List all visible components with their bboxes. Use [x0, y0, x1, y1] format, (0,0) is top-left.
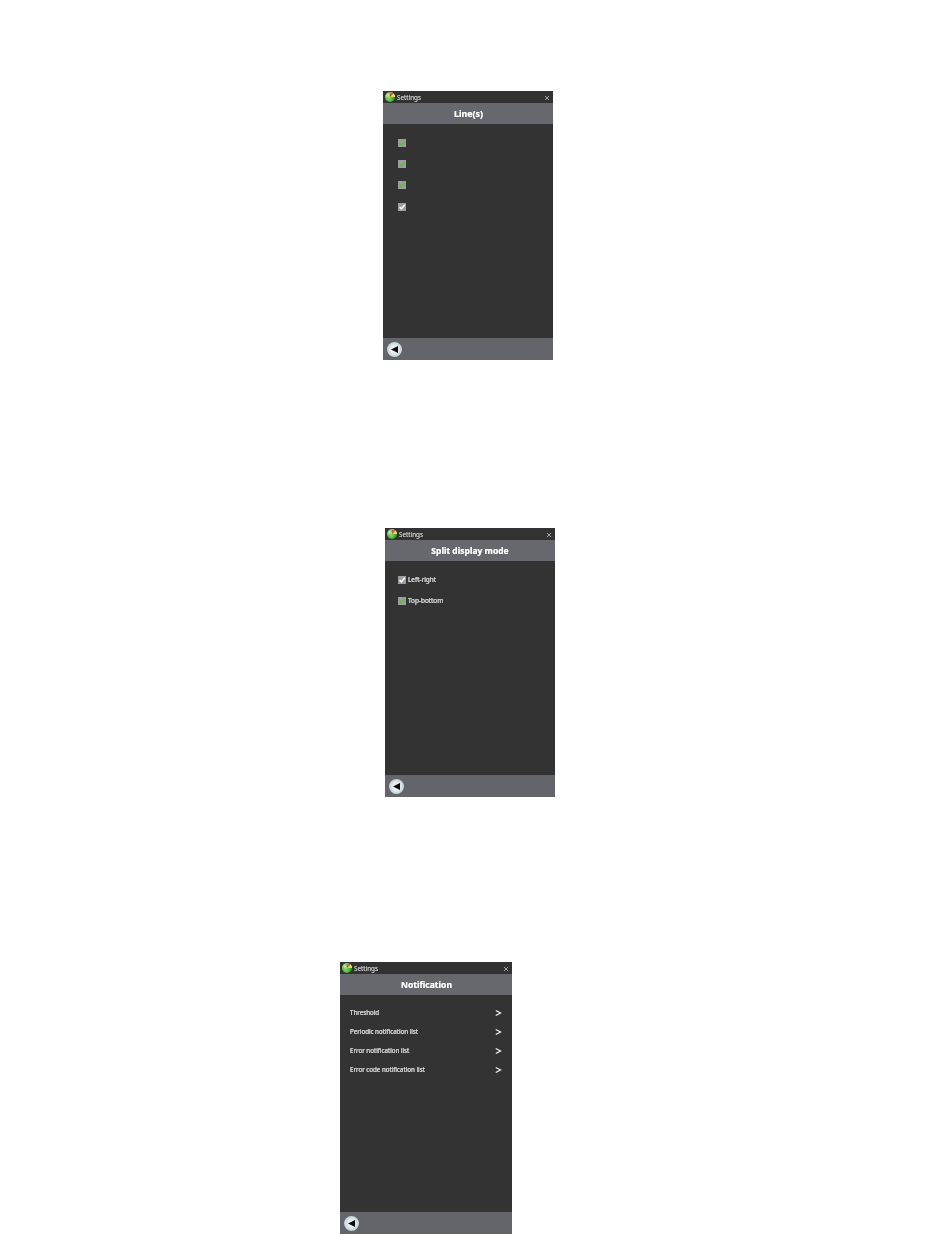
- button[interactable]: Error notification list: [340, 1040, 512, 1059]
- staticText: Notification: [401, 979, 452, 991]
- button[interactable]: [383, 196, 553, 217]
- staticText: Error notification list: [350, 1046, 410, 1054]
- staticText: Error code notification list: [350, 1065, 425, 1073]
- button[interactable]: Close: [544, 530, 553, 539]
- staticText: Left-right: [408, 575, 436, 584]
- button[interactable]: Back: [344, 1216, 359, 1231]
- button[interactable]: Back: [389, 779, 404, 794]
- button[interactable]: Periodic notification list: [340, 1021, 512, 1040]
- staticText: Top-bottom: [408, 596, 444, 605]
- button[interactable]: Left-right: [385, 569, 555, 590]
- staticText: Settings: [354, 964, 378, 973]
- button[interactable]: Threshold: [340, 1002, 512, 1021]
- staticText: Settings: [399, 530, 423, 539]
- button[interactable]: [383, 153, 553, 174]
- button[interactable]: Error code notification list: [340, 1059, 512, 1078]
- button[interactable]: Close: [542, 93, 551, 102]
- staticText: Periodic notification list: [350, 1027, 419, 1035]
- staticText: Line(s): [454, 108, 483, 120]
- button[interactable]: [383, 174, 553, 196]
- button[interactable]: [383, 132, 553, 153]
- staticText: Threshold: [350, 1008, 380, 1016]
- button[interactable]: Close: [501, 964, 510, 973]
- button[interactable]: Back: [387, 342, 402, 357]
- staticText: Split display mode: [431, 545, 509, 557]
- staticText: Settings: [397, 93, 421, 102]
- button[interactable]: Top-bottom: [385, 590, 555, 611]
